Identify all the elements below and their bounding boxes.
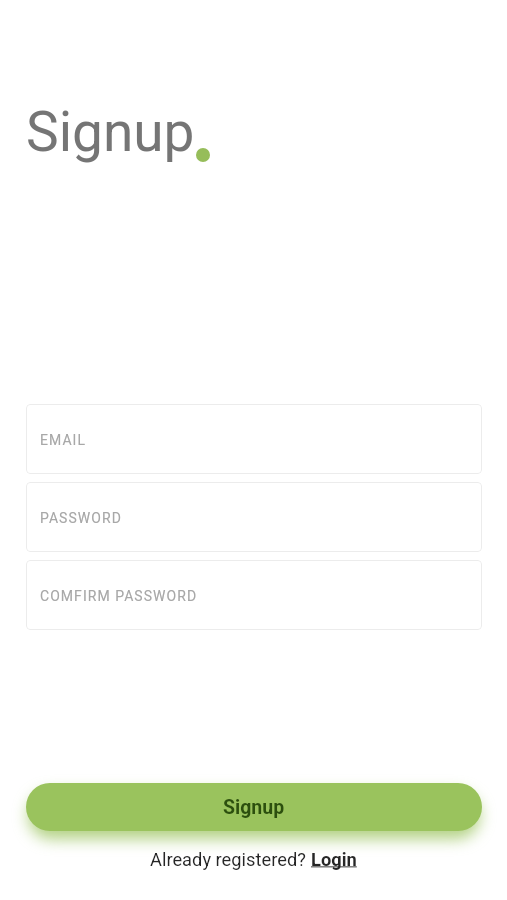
button[interactable]: EMAIL bbox=[26, 404, 482, 474]
staticText: EMAIL bbox=[40, 432, 87, 448]
staticText: COMFIRM PASSWORD bbox=[40, 588, 198, 604]
button[interactable]: PASSWORD bbox=[26, 482, 482, 552]
button[interactable]: Login bbox=[311, 849, 357, 870]
staticText: Already registered? bbox=[150, 849, 311, 870]
staticText: PASSWORD bbox=[40, 510, 122, 526]
button[interactable]: COMFIRM PASSWORD bbox=[26, 560, 482, 630]
staticText: Signup bbox=[223, 796, 285, 819]
staticText: Login bbox=[311, 849, 357, 870]
staticText: Signup bbox=[26, 100, 195, 164]
button[interactable]: Signup bbox=[26, 783, 482, 831]
